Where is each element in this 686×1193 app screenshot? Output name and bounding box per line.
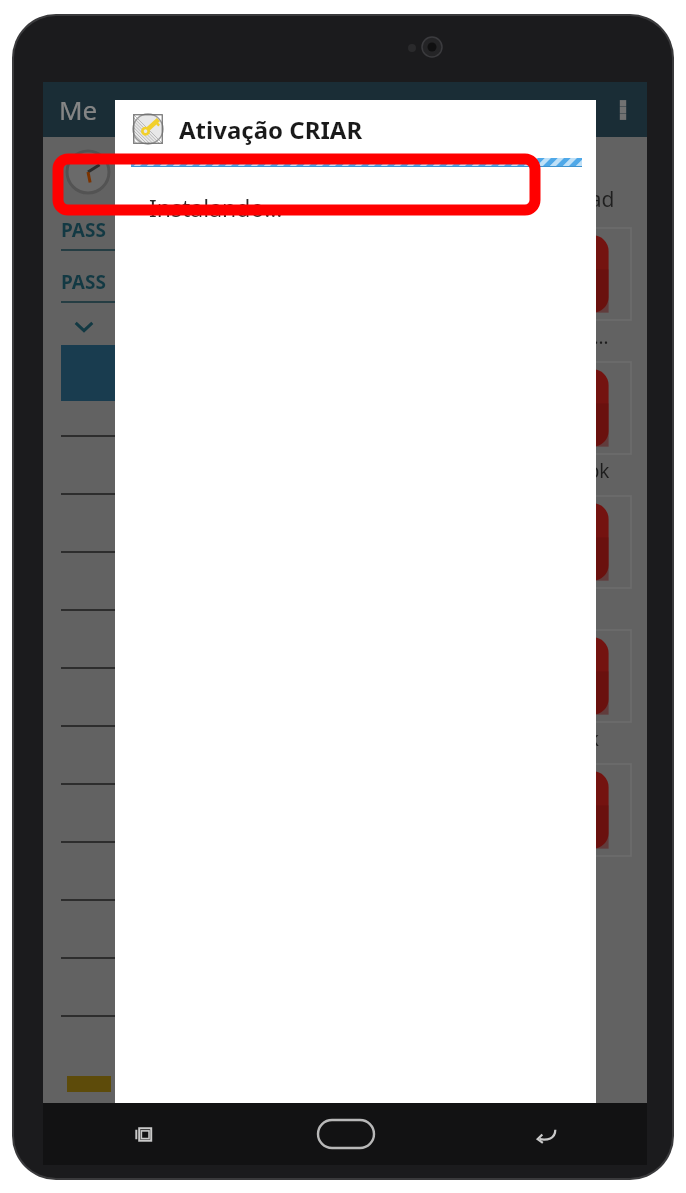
button[interactable] <box>575 496 631 588</box>
staticText: Instalando… <box>149 192 283 223</box>
staticText: oad <box>577 185 615 214</box>
staticText: PASS <box>61 269 106 295</box>
button[interactable]: Home <box>245 1103 446 1165</box>
button[interactable]: Back <box>446 1103 647 1165</box>
staticText: Me <box>59 92 98 127</box>
button[interactable]: Recent apps <box>43 1103 245 1165</box>
button[interactable]: More options <box>599 86 647 134</box>
button[interactable] <box>575 630 631 722</box>
staticText: Ativação CRIAR <box>179 113 363 146</box>
button[interactable] <box>61 345 135 401</box>
button[interactable] <box>575 228 631 320</box>
staticText: PASS <box>61 217 106 243</box>
staticText: apk <box>577 458 610 484</box>
staticText: pk <box>577 726 599 752</box>
button[interactable] <box>575 764 631 856</box>
staticText: (2… <box>577 324 609 350</box>
button[interactable] <box>575 362 631 454</box>
